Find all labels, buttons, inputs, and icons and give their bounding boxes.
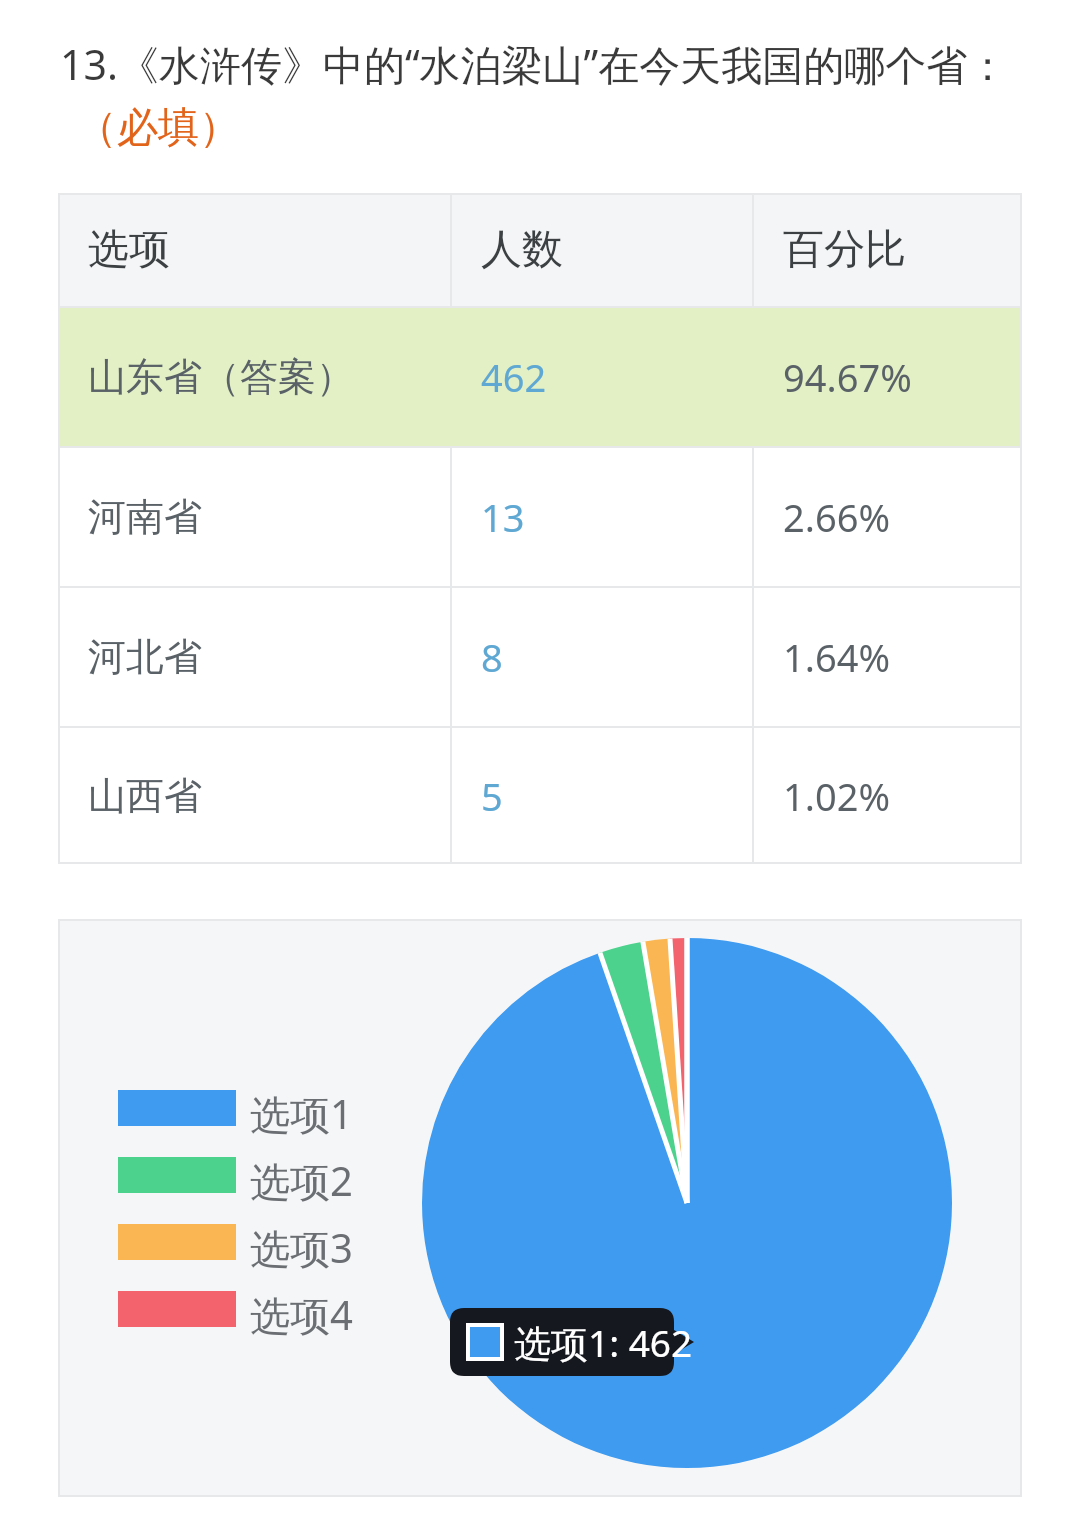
staticText: 462 — [481, 351, 547, 403]
staticText: 1.02% — [783, 770, 890, 822]
staticText: 2.66% — [783, 491, 890, 543]
staticText: 8 — [481, 631, 503, 683]
button[interactable]: 河南省 — [59, 448, 1021, 586]
other: Pie chart of option results — [59, 920, 1021, 1496]
staticText: 13.《水浒传》中的“水泊梁山”在今天我国的哪个省： — [60, 36, 1009, 92]
staticText: 河北省 — [88, 633, 202, 681]
staticText: 94.67% — [783, 351, 912, 403]
button[interactable]: 选项 — [59, 194, 1021, 306]
staticText: 百分比 — [783, 224, 906, 276]
staticText: 山西省 — [88, 772, 202, 820]
staticText: （必填） — [76, 102, 240, 154]
button[interactable]: 选项4 — [250, 1281, 420, 1348]
staticText: 选项2 — [250, 1153, 353, 1208]
staticText: 河南省 — [88, 493, 202, 541]
button[interactable]: 山西省 — [59, 728, 1021, 863]
button[interactable]: 选项1 — [250, 1080, 420, 1147]
staticText: 选项1: 462 — [514, 1317, 693, 1368]
staticText: 13 — [481, 491, 525, 543]
button[interactable]: 河北省 — [59, 588, 1021, 726]
staticText: 选项1 — [250, 1086, 353, 1141]
staticText: 山东省（答案） — [88, 353, 354, 401]
button[interactable]: 选项3 — [250, 1214, 420, 1281]
staticText: 选项 — [88, 224, 170, 276]
button[interactable]: Pie chart of option results — [59, 920, 1021, 1496]
staticText: 1.64% — [783, 631, 890, 683]
button[interactable]: 选项2 — [250, 1147, 420, 1214]
staticText: 人数 — [481, 224, 563, 276]
button[interactable]: 山东省（答案） — [59, 308, 1021, 446]
staticText: 选项4 — [250, 1287, 353, 1342]
staticText: 5 — [481, 770, 503, 822]
staticText: 选项3 — [250, 1220, 353, 1275]
